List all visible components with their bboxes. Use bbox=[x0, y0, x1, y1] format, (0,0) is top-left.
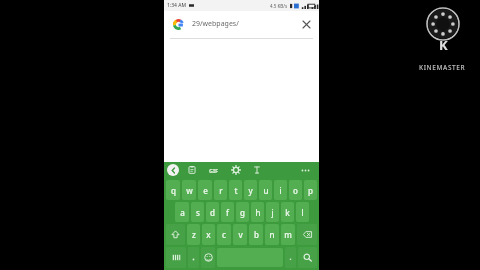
button[interactable]: u bbox=[259, 180, 272, 200]
staticText: l bbox=[301, 207, 304, 218]
staticText: q bbox=[171, 185, 176, 196]
staticText: u bbox=[263, 185, 269, 196]
staticText: b bbox=[254, 229, 259, 240]
staticText: d bbox=[210, 207, 215, 218]
button[interactable]: j bbox=[266, 202, 279, 222]
staticText: t bbox=[234, 185, 238, 196]
staticText: r bbox=[219, 185, 223, 196]
staticText: f bbox=[226, 207, 229, 218]
button[interactable]: w bbox=[182, 180, 196, 200]
button[interactable]: h bbox=[251, 202, 264, 222]
button[interactable]: Comma bbox=[188, 247, 199, 268]
button[interactable]: s bbox=[191, 202, 204, 222]
button[interactable]: c bbox=[217, 224, 231, 245]
button[interactable]: Clipboard bbox=[186, 164, 198, 176]
button[interactable]: o bbox=[289, 180, 302, 200]
button[interactable]: a bbox=[175, 202, 189, 222]
button[interactable]: y bbox=[244, 180, 257, 200]
staticText: o bbox=[293, 185, 298, 196]
staticText: z bbox=[192, 229, 196, 240]
staticText: g bbox=[240, 207, 245, 218]
button[interactable]: l bbox=[296, 202, 309, 222]
button[interactable]: q bbox=[166, 180, 180, 200]
staticText: i bbox=[279, 185, 282, 196]
staticText: 1:34 AM bbox=[167, 2, 187, 9]
staticText: v bbox=[238, 229, 243, 240]
staticText: h bbox=[255, 207, 261, 218]
button[interactable]: k bbox=[281, 202, 294, 222]
staticText: p bbox=[308, 185, 313, 196]
button[interactable]: Search bbox=[298, 247, 317, 268]
button[interactable]: n bbox=[265, 224, 279, 245]
button[interactable]: Back bbox=[167, 164, 179, 176]
staticText: j bbox=[271, 207, 274, 218]
staticText: x bbox=[206, 229, 211, 240]
button[interactable]: 29/webpages/resultviewlogin.aspx bbox=[192, 19, 295, 29]
button[interactable]: r bbox=[214, 180, 227, 200]
button[interactable]: Backspace bbox=[297, 224, 317, 245]
button[interactable]: e bbox=[198, 180, 212, 200]
button[interactable]: m bbox=[281, 224, 295, 245]
staticText: GIF bbox=[209, 167, 219, 174]
staticText: a bbox=[180, 207, 185, 218]
button[interactable]: g bbox=[236, 202, 249, 222]
button[interactable]: f bbox=[221, 202, 234, 222]
button[interactable]: Emoji bbox=[201, 247, 215, 268]
staticText: 29/webpages/resultviewlogin.aspx bbox=[192, 19, 295, 29]
button[interactable]: Period bbox=[285, 247, 296, 268]
button[interactable]: b bbox=[249, 224, 263, 245]
button[interactable]: i bbox=[274, 180, 287, 200]
staticText: c bbox=[222, 229, 226, 240]
staticText: n bbox=[269, 229, 275, 240]
button[interactable]: z bbox=[187, 224, 200, 245]
button[interactable]: GIF bbox=[207, 164, 221, 176]
button[interactable]: Settings bbox=[230, 164, 242, 176]
staticText: k bbox=[285, 207, 290, 218]
button[interactable]: Shift bbox=[166, 224, 185, 245]
staticText: e bbox=[203, 185, 208, 196]
button[interactable]: Clear bbox=[299, 17, 313, 31]
staticText: s bbox=[196, 207, 200, 218]
button[interactable]: p bbox=[304, 180, 317, 200]
staticText: 4.5 KB/s bbox=[270, 3, 288, 9]
button[interactable]: Text tools bbox=[251, 164, 263, 176]
button[interactable]: v bbox=[233, 224, 247, 245]
button[interactable]: More options bbox=[299, 164, 311, 176]
staticText: KINEMASTER bbox=[419, 63, 466, 72]
button[interactable]: Symbols bbox=[166, 247, 186, 268]
staticText: m bbox=[284, 229, 292, 240]
button[interactable]: d bbox=[206, 202, 219, 222]
button[interactable]: x bbox=[202, 224, 215, 245]
staticText: w bbox=[186, 185, 193, 196]
staticText: K bbox=[439, 36, 448, 54]
button[interactable]: t bbox=[229, 180, 242, 200]
button[interactable]: Google search bbox=[170, 16, 186, 32]
staticText: y bbox=[248, 185, 253, 196]
